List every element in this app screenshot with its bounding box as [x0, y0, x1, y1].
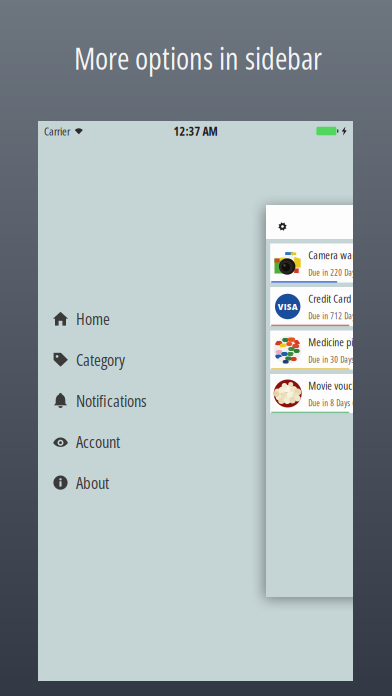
button[interactable]: VISA — [270, 287, 356, 326]
staticText: Due in 30 Days (2022- — [308, 354, 376, 365]
staticText: Home — [76, 307, 110, 330]
button[interactable]: Notifications — [37, 380, 197, 421]
staticText: Category — [76, 348, 125, 371]
button[interactable]: Medicine pills — [270, 330, 356, 369]
staticText: More options in sidebar — [74, 38, 322, 78]
button[interactable]: Settings — [272, 216, 292, 236]
staticText: Credit Card — [308, 291, 351, 306]
button[interactable]: Category — [37, 339, 197, 380]
staticText: About — [76, 471, 109, 494]
staticText: Camera warranty — [308, 247, 375, 263]
staticText: Notifications — [76, 389, 147, 412]
staticText: 12:37 AM — [173, 123, 217, 139]
staticText: Due in 220 Days (2022- — [308, 267, 380, 278]
button[interactable]: Account — [37, 421, 197, 462]
button[interactable]: Movie voucher — [270, 374, 356, 413]
staticText: Medicine pills — [308, 334, 361, 350]
button[interactable]: Home — [37, 298, 197, 339]
button[interactable]: About — [37, 462, 197, 503]
staticText: Due in 712 Days (2024 — [308, 310, 378, 322]
staticText: Due in 8 Days (2022- — [308, 397, 372, 409]
staticText: Movie voucher — [308, 378, 365, 393]
button[interactable]: Camera warranty — [270, 243, 356, 282]
staticText: Carrier — [44, 123, 70, 139]
staticText: Account — [76, 430, 120, 453]
staticText: VISA — [278, 300, 298, 313]
